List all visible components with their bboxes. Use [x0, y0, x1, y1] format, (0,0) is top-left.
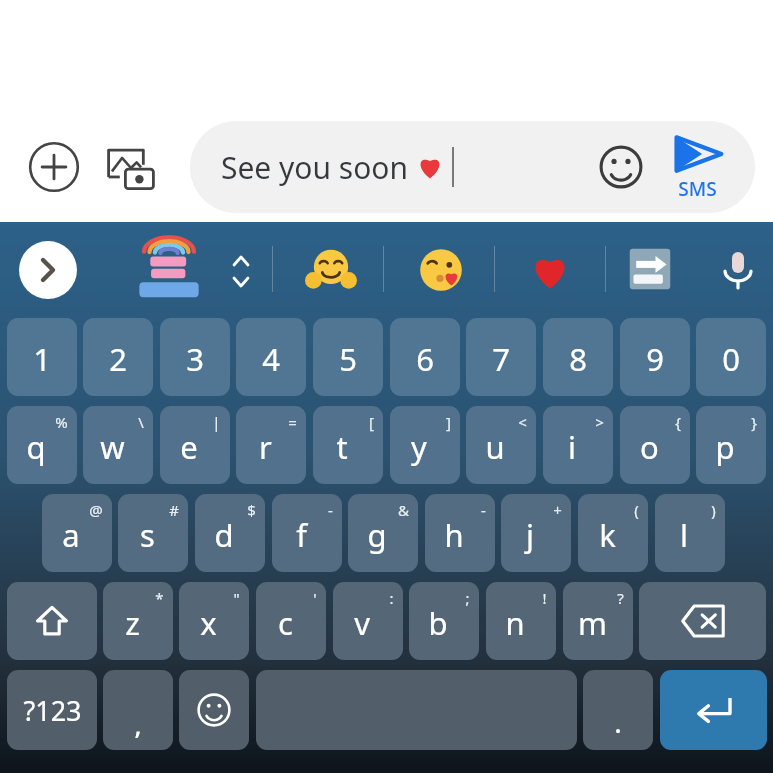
button[interactable]: k	[578, 494, 648, 572]
button[interactable]: v	[333, 582, 403, 660]
staticText: p	[715, 426, 735, 468]
button[interactable]: 6	[390, 318, 460, 396]
button[interactable]: 4	[236, 318, 306, 396]
button[interactable]: Emoji	[598, 144, 644, 190]
staticText: %	[55, 412, 68, 432]
button[interactable]: Gallery	[103, 140, 159, 196]
staticText: *	[155, 588, 164, 608]
staticText: 5	[339, 338, 357, 380]
button[interactable]: l	[655, 494, 725, 572]
staticText: z	[125, 602, 140, 644]
button[interactable]: Shift	[7, 582, 97, 660]
staticText: "	[233, 588, 240, 608]
staticText: e	[180, 426, 198, 468]
button[interactable]: Add attachment	[28, 141, 80, 193]
button[interactable]: Expand	[19, 241, 77, 299]
button[interactable]: q	[7, 406, 77, 484]
staticText: ,	[134, 707, 142, 742]
staticText: s	[140, 514, 155, 556]
button[interactable]: Enter	[660, 670, 767, 750]
button[interactable]: Red heart emoji	[527, 248, 573, 294]
staticText: #	[169, 500, 179, 520]
staticText: 2	[109, 338, 127, 380]
button[interactable]: Backspace	[639, 582, 766, 660]
button[interactable]: m	[563, 582, 633, 660]
button[interactable]: b	[409, 582, 479, 660]
staticText: }	[751, 412, 757, 432]
button[interactable]: Soon sticker	[627, 246, 673, 292]
button[interactable]: p	[696, 406, 766, 484]
staticText: u	[485, 426, 505, 468]
button[interactable]: Send SMS	[665, 132, 729, 202]
button[interactable]: c	[256, 582, 326, 660]
button[interactable]: Voice input	[713, 244, 763, 294]
button[interactable]: 5	[313, 318, 383, 396]
button[interactable]: y	[390, 406, 460, 484]
button[interactable]: f	[272, 494, 342, 572]
staticText: '	[313, 588, 317, 608]
button[interactable]: 0	[696, 318, 766, 396]
staticText: (	[634, 500, 639, 520]
button[interactable]: x	[179, 582, 249, 660]
button[interactable]: See you soon sticker	[130, 236, 208, 304]
button[interactable]: r	[236, 406, 306, 484]
staticText: $	[247, 500, 256, 520]
staticText: 6	[416, 338, 434, 380]
button[interactable]: u	[466, 406, 536, 484]
button[interactable]: 9	[620, 318, 690, 396]
staticText: 9	[646, 338, 664, 380]
button[interactable]: d	[195, 494, 265, 572]
button[interactable]: w	[83, 406, 153, 484]
button[interactable]: Kissing face emoji	[415, 244, 467, 296]
staticText: f	[296, 514, 307, 556]
button[interactable]: j	[501, 494, 571, 572]
button[interactable]: g	[348, 494, 418, 572]
staticText: t	[336, 426, 348, 468]
staticText: 7	[492, 338, 510, 380]
button[interactable]: Space	[256, 670, 577, 750]
staticText: 3	[186, 338, 204, 380]
button[interactable]: ?123	[7, 670, 97, 750]
staticText: +	[553, 500, 562, 520]
button[interactable]: 2	[83, 318, 153, 396]
staticText: q	[26, 426, 46, 468]
staticText: 1	[33, 338, 51, 380]
button[interactable]: .	[583, 670, 653, 750]
staticText: \	[138, 412, 144, 432]
button[interactable]: ,	[103, 670, 173, 750]
button[interactable]: z	[103, 582, 173, 660]
staticText: 4	[262, 338, 280, 380]
staticText: n	[505, 602, 525, 644]
staticText: m	[578, 602, 607, 644]
staticText: w	[100, 426, 125, 468]
staticText: &	[398, 500, 409, 520]
button[interactable]: a	[42, 494, 112, 572]
staticText: c	[278, 602, 293, 644]
button[interactable]: h	[425, 494, 495, 572]
button[interactable]: Hugging face emoji	[305, 244, 357, 296]
staticText: y	[411, 426, 427, 468]
button[interactable]: n	[486, 582, 556, 660]
staticText: 0	[722, 338, 740, 380]
staticText: i	[568, 426, 576, 468]
staticText: )	[711, 500, 716, 520]
button[interactable]: 8	[543, 318, 613, 396]
staticText: r	[259, 426, 272, 468]
button[interactable]: s	[118, 494, 188, 572]
button[interactable]: More stickers	[224, 252, 258, 292]
button[interactable]: e	[160, 406, 230, 484]
button[interactable]: i	[543, 406, 613, 484]
staticText: x	[200, 602, 217, 644]
staticText: h	[444, 514, 464, 556]
staticText: .	[614, 705, 622, 740]
button[interactable]: 1	[7, 318, 77, 396]
button[interactable]: Emoji keyboard	[179, 670, 249, 750]
staticText: <	[518, 412, 527, 432]
button[interactable]: 7	[466, 318, 536, 396]
button[interactable]: t	[313, 406, 383, 484]
staticText: >	[595, 412, 604, 432]
button[interactable]: See you soon	[190, 121, 755, 213]
staticText: a	[62, 514, 80, 556]
button[interactable]: o	[620, 406, 690, 484]
button[interactable]: 3	[160, 318, 230, 396]
